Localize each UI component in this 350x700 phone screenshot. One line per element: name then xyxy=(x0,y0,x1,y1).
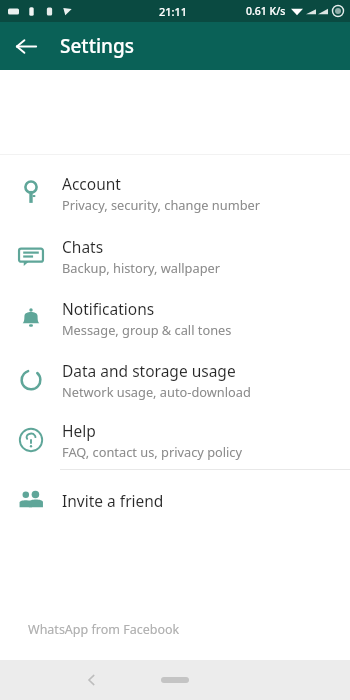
staticText: 0.61 K/s xyxy=(246,4,286,18)
staticText: Help xyxy=(62,420,96,441)
staticText: Message, group & call tones xyxy=(62,321,232,338)
staticText: Chats xyxy=(62,236,104,257)
staticText: Backup, history, wallpaper xyxy=(62,259,221,276)
staticText: Settings xyxy=(60,33,134,59)
staticText: Notifications xyxy=(62,298,155,319)
staticText: FAQ, contact us, privacy policy xyxy=(62,443,243,460)
button[interactable]: Account xyxy=(0,162,350,224)
button[interactable]: Home xyxy=(153,670,197,690)
button[interactable]: Notifications xyxy=(0,287,350,349)
button[interactable]: Invite a friend xyxy=(0,470,350,530)
button[interactable]: Back xyxy=(6,26,46,66)
staticText: Privacy, security, change number xyxy=(62,196,261,213)
button[interactable]: Chats xyxy=(0,224,350,287)
staticText: Network usage, auto-download xyxy=(62,383,251,400)
button[interactable]: Data and storage usage xyxy=(0,349,350,411)
staticText: Invite a friend xyxy=(62,490,164,511)
button[interactable]: Help xyxy=(0,411,350,469)
button[interactable]: Back xyxy=(78,666,106,694)
staticText: 21:11 xyxy=(159,4,188,19)
staticText: WhatsApp from Facebook xyxy=(28,621,180,638)
staticText: Account xyxy=(62,173,121,194)
staticText: Data and storage usage xyxy=(62,360,236,381)
